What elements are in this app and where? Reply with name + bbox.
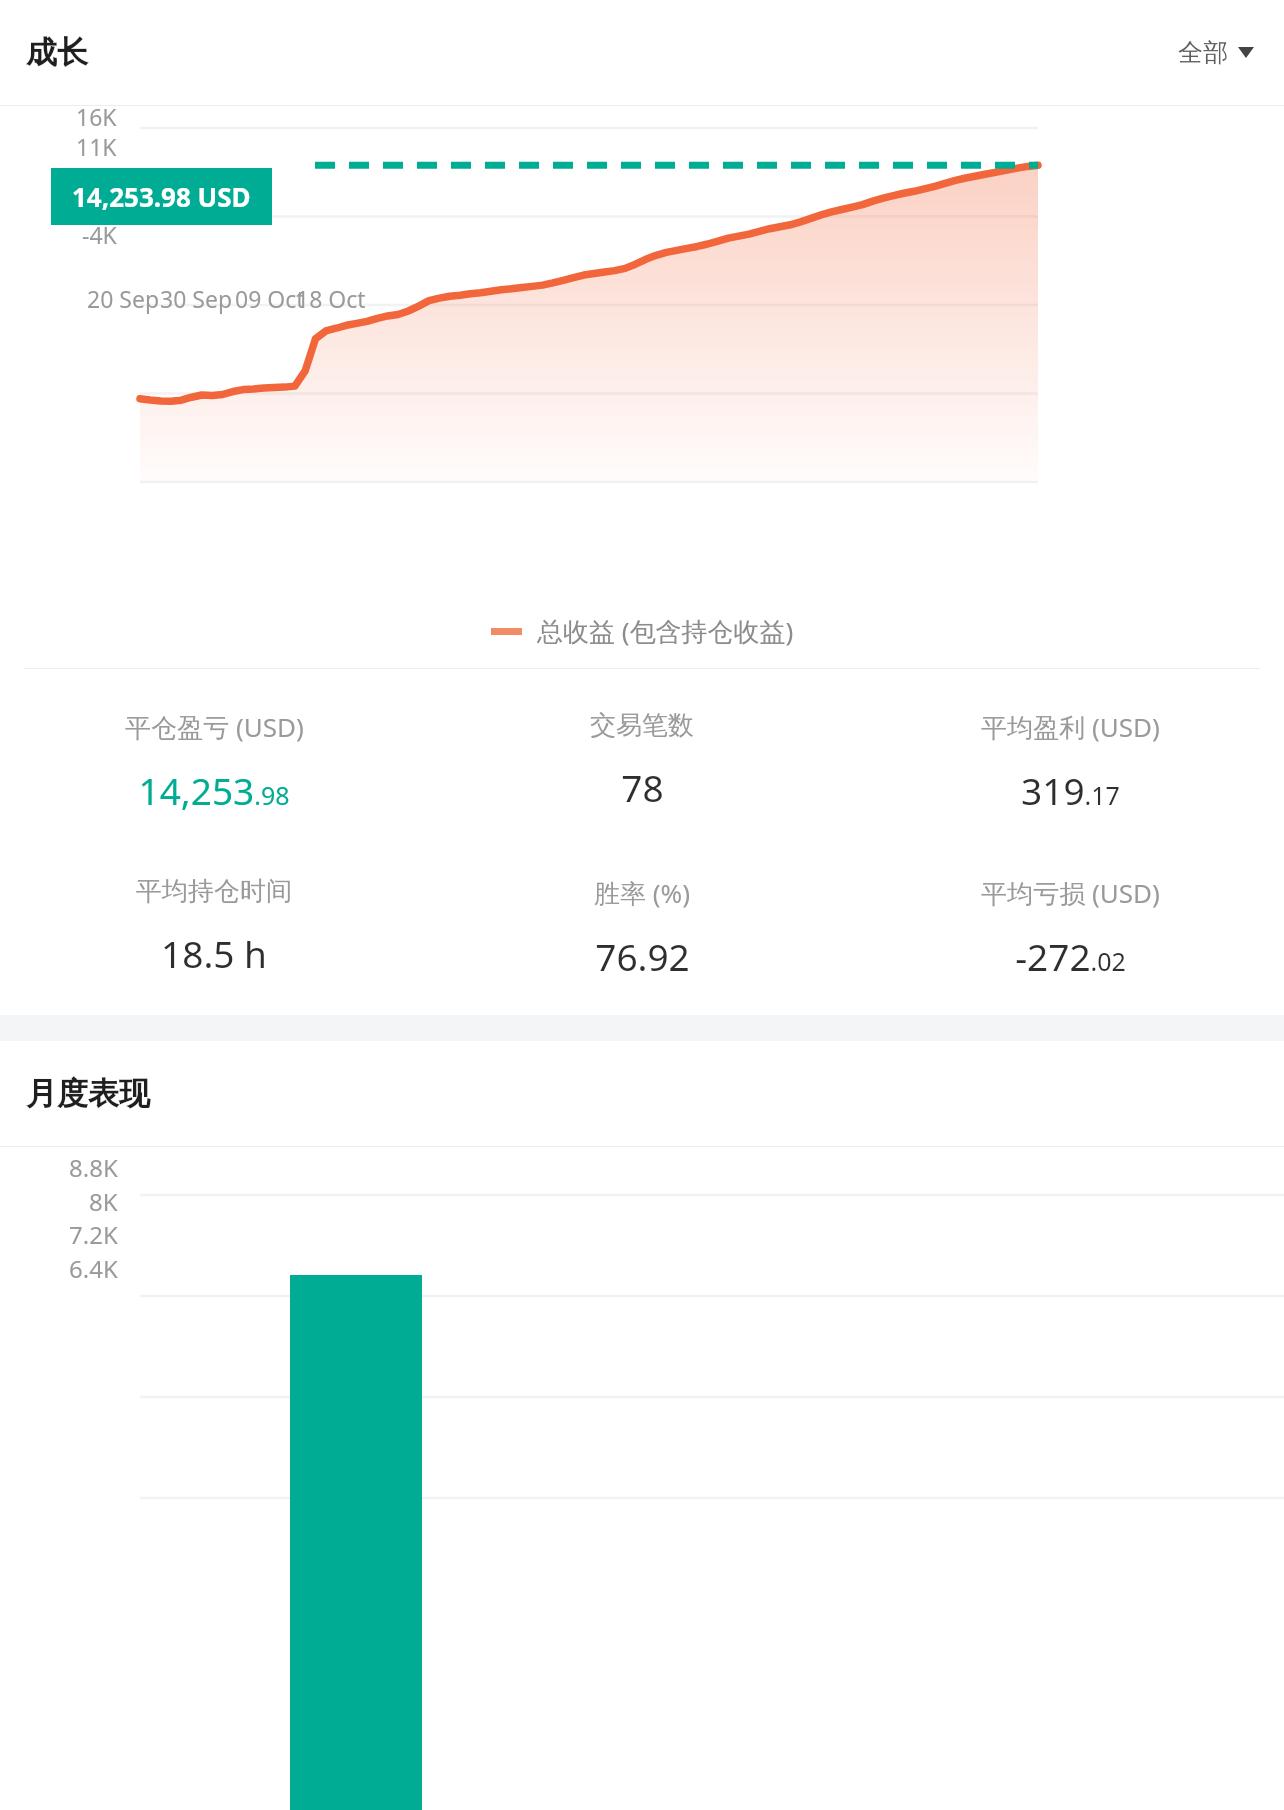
- staticText: -4K: [82, 219, 117, 250]
- staticText: 6.4K: [69, 1252, 118, 1285]
- staticText: 7.2K: [69, 1218, 118, 1251]
- button[interactable]: 平均持仓时间: [0, 871, 428, 982]
- staticText: 平均亏损 (USD): [981, 875, 1160, 911]
- staticText: 16K: [76, 101, 117, 132]
- button[interactable]: 胜率 (%): [428, 871, 856, 985]
- staticText: 平仓盈亏 (USD): [125, 709, 304, 745]
- staticText: 8K: [89, 1185, 118, 1218]
- button[interactable]: 平均亏损 (USD): [856, 871, 1284, 985]
- other: Select period: [1238, 47, 1254, 58]
- staticText: -272.02: [1015, 931, 1126, 981]
- staticText: 平均持仓时间: [136, 875, 292, 908]
- staticText: 14,253.98 USD: [72, 179, 251, 214]
- staticText: 月度表现: [26, 1074, 150, 1113]
- staticText: 全部: [1178, 37, 1228, 68]
- staticText: 18.5 h: [161, 928, 267, 978]
- button[interactable]: 平仓盈亏 (USD): [0, 705, 428, 819]
- staticText: 11K: [76, 131, 117, 162]
- button[interactable]: 交易笔数: [428, 705, 856, 816]
- staticText: 09 Oct: [235, 283, 305, 314]
- staticText: 8.8K: [69, 1151, 118, 1184]
- staticText: 成长: [26, 33, 88, 72]
- staticText: 76.92: [595, 931, 690, 981]
- button[interactable]: 14,253.98 USD: [51, 168, 272, 225]
- staticText: 20 Sep: [87, 283, 160, 314]
- button[interactable]: 总收益 (包含持仓收益): [0, 594, 1284, 668]
- staticText: 6K: [89, 160, 117, 191]
- button[interactable]: 平均盈利 (USD): [856, 705, 1284, 819]
- staticText: 18 Oct: [296, 283, 366, 314]
- staticText: 14,253.98: [138, 765, 290, 815]
- staticText: 30 Sep: [160, 283, 233, 314]
- staticText: 交易笔数: [590, 709, 694, 742]
- staticText: 胜率 (%): [594, 875, 690, 911]
- staticText: 1K: [89, 190, 117, 221]
- staticText: 319.17: [1021, 765, 1120, 815]
- staticText: 78: [621, 762, 664, 812]
- staticText: 平均盈利 (USD): [981, 709, 1160, 745]
- staticText: 总收益 (包含持仓收益): [537, 613, 794, 649]
- button[interactable]: 全部: [1172, 27, 1260, 78]
